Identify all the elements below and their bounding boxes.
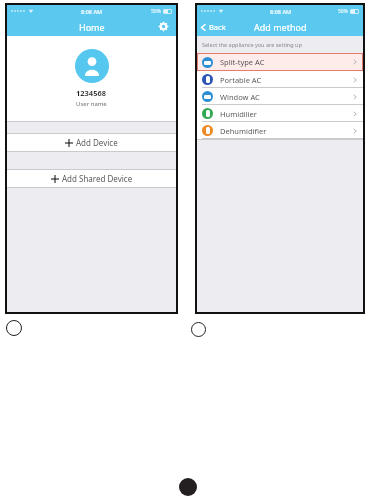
- staticText: 50%: [338, 8, 348, 15]
- staticText: 8:08 AM: [270, 8, 292, 15]
- staticText: 8:08 AM: [81, 8, 103, 15]
- staticText: Add Device: [76, 137, 118, 148]
- staticText: Home: [79, 21, 105, 33]
- staticText: Add method: [254, 21, 307, 33]
- button[interactable]: Portable AC: [197, 71, 363, 88]
- button[interactable]: Window AC: [197, 88, 363, 105]
- staticText: Split-type AC: [220, 57, 265, 67]
- button[interactable]: Dehumidifier: [197, 122, 363, 139]
- button[interactable]: Split-type AC: [197, 53, 363, 71]
- staticText: User name: [76, 100, 107, 108]
- staticText: 1234568: [76, 88, 107, 98]
- staticText: Back: [209, 22, 226, 32]
- button[interactable]: Humidilier: [197, 105, 363, 122]
- staticText: Add Shared Device: [62, 173, 133, 184]
- staticText: 50%: [151, 8, 161, 15]
- staticText: Select the appliance you are setting up: [202, 41, 302, 48]
- button[interactable]: Back: [200, 22, 226, 32]
- staticText: Portable AC: [220, 75, 262, 85]
- staticText: Window AC: [220, 92, 260, 102]
- button[interactable]: Add Shared Device: [7, 170, 176, 187]
- button[interactable]: Add Device: [7, 134, 176, 151]
- staticText: Dehumidifier: [220, 126, 267, 136]
- staticText: Humidilier: [220, 109, 257, 119]
- button[interactable]: Settings: [157, 20, 170, 33]
